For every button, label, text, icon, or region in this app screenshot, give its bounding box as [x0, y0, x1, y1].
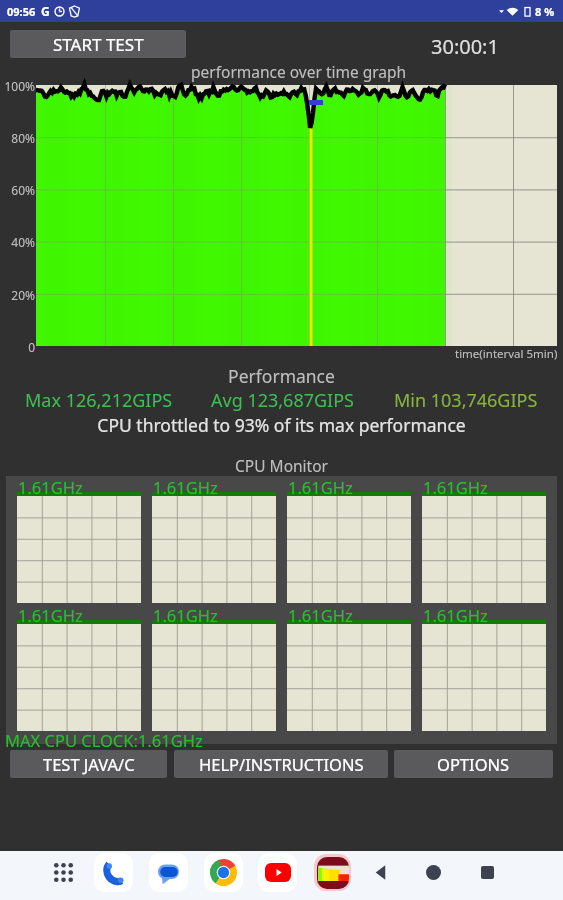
staticText: 60%: [11, 182, 35, 198]
staticText: 8 %: [535, 4, 555, 19]
button[interactable]: Recents: [466, 851, 508, 893]
staticText: 1.61GHz: [423, 604, 488, 626]
staticText: 1.61GHz: [288, 604, 353, 626]
staticText: 40%: [11, 234, 35, 250]
staticText: 100%: [4, 78, 35, 94]
staticText: performance over time graph: [191, 61, 407, 82]
staticText: 80%: [11, 130, 35, 146]
staticText: CPU throttled to 93% of its max performa…: [0, 413, 563, 437]
staticText: 1.61GHz: [18, 476, 83, 498]
button[interactable]: Apps: [42, 851, 84, 893]
staticText: MAX CPU CLOCK:1.61GHz: [5, 729, 203, 751]
staticText: Performance: [0, 364, 563, 388]
staticText: 1.61GHz: [153, 604, 218, 626]
staticText: 30:00:1: [431, 33, 499, 60]
staticText: 1.61GHz: [18, 604, 83, 626]
button[interactable]: Chrome: [202, 851, 244, 893]
staticText: 20%: [11, 287, 35, 303]
staticText: Avg 123,687GIPS: [211, 388, 354, 413]
button[interactable]: Messages: [147, 851, 189, 893]
staticText: time(interval 5min): [455, 346, 558, 362]
staticText: START TEST: [53, 33, 144, 56]
button[interactable]: START TEST: [10, 30, 186, 58]
button[interactable]: OPTIONS: [394, 750, 553, 778]
staticText: 1.61GHz: [423, 476, 488, 498]
button[interactable]: YouTube: [256, 851, 298, 893]
staticText: 0: [28, 339, 35, 355]
staticText: 1.61GHz: [153, 476, 218, 498]
staticText: HELP/INSTRUCTIONS: [199, 753, 364, 775]
staticText: CPU Monitor: [0, 455, 563, 476]
staticText: Max 126,212GIPS: [25, 388, 173, 413]
button[interactable]: HELP/INSTRUCTIONS: [174, 750, 388, 778]
button[interactable]: Back: [360, 851, 402, 893]
staticText: TEST JAVA/C: [43, 753, 135, 775]
button[interactable]: TEST JAVA/C: [10, 750, 167, 778]
staticText: G: [41, 3, 50, 19]
button[interactable]: Phone: [92, 851, 134, 893]
button[interactable]: Home: [412, 851, 454, 893]
staticText: Min 103,746GIPS: [394, 388, 538, 413]
staticText: 1.61GHz: [288, 476, 353, 498]
staticText: 09:56: [7, 4, 36, 19]
staticText: OPTIONS: [437, 753, 510, 775]
button[interactable]: CPU Throttling Test: [311, 851, 353, 893]
